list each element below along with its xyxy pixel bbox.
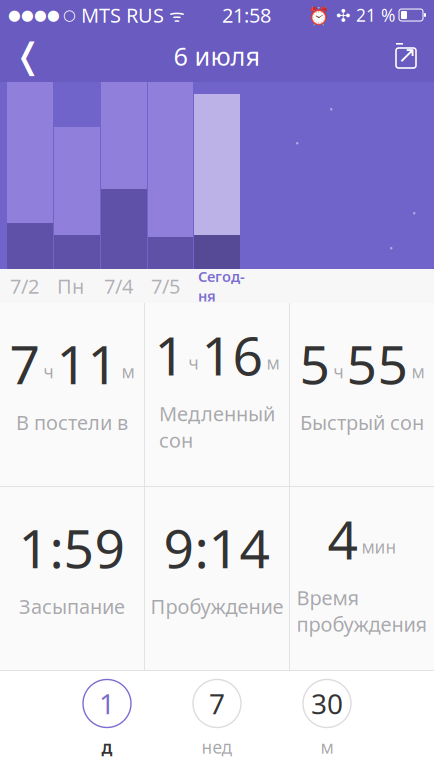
staticText: 5	[299, 328, 330, 399]
staticText: ᯤ	[164, 3, 185, 26]
staticText: ч	[43, 360, 53, 383]
staticText: 30	[311, 685, 343, 722]
staticText: ●●●●	[8, 7, 60, 23]
staticText: ↗	[397, 42, 416, 67]
staticText: 4	[327, 503, 358, 574]
staticText: ○	[63, 7, 76, 23]
staticText: 1	[99, 685, 115, 722]
staticText: 6 июля	[173, 39, 260, 73]
staticText: м	[266, 351, 279, 374]
staticText: нед	[201, 735, 232, 758]
staticText: 7/5	[151, 273, 180, 299]
staticText: Сегодня	[198, 266, 245, 305]
button[interactable]: 7	[162, 677, 272, 761]
staticText: 16	[201, 319, 263, 390]
staticText: В постели в	[16, 409, 128, 436]
staticText: ч	[333, 360, 343, 383]
button[interactable]: Back	[0, 30, 56, 82]
staticText: 7/4	[104, 273, 133, 299]
staticText: м	[411, 360, 424, 383]
staticText: 21:58	[222, 2, 271, 28]
staticText: ⏰ ✣ 21 %	[308, 3, 395, 26]
staticText: мин	[361, 535, 396, 558]
staticText: Медленный сон	[159, 400, 275, 453]
staticText: Пробуждение	[150, 593, 283, 620]
staticText: 1:59	[18, 512, 125, 583]
staticText: 1	[154, 319, 185, 390]
staticText: м	[320, 735, 333, 758]
staticText: MTS RUS	[76, 2, 164, 28]
staticText: ❬	[13, 36, 42, 76]
staticText: 9:14	[163, 512, 270, 583]
staticText: ч	[188, 351, 198, 374]
staticText: Быстрый сон	[300, 409, 424, 436]
staticText: Пн	[57, 273, 84, 299]
staticText: Время пробуждения	[296, 584, 427, 637]
staticText: 7	[209, 685, 225, 722]
staticText: 11	[56, 328, 118, 399]
staticText: 55	[346, 328, 408, 399]
button[interactable]: 1	[52, 677, 162, 761]
staticText: Засыпание	[19, 593, 125, 620]
staticText: 7	[9, 328, 40, 399]
button[interactable]: Share	[378, 30, 434, 82]
staticText: 7/2	[10, 273, 39, 299]
staticText: д	[101, 735, 112, 758]
button[interactable]: 30	[272, 677, 382, 761]
staticText: м	[121, 360, 134, 383]
